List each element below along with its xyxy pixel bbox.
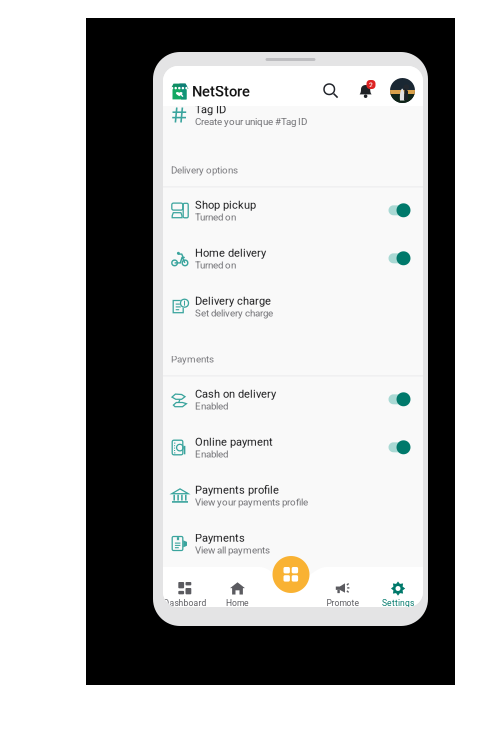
staticText: Set delivery charge [195, 307, 273, 319]
staticText: Tag ID [195, 103, 226, 116]
staticText: Delivery options [171, 164, 238, 176]
staticText: View your payments profile [195, 496, 308, 508]
button[interactable]: Tag ID [163, 92, 423, 140]
button[interactable]: Apps [272, 556, 309, 593]
staticText: Online payment [195, 435, 273, 448]
staticText: Payments [171, 353, 214, 365]
staticText: Home delivery [195, 246, 266, 259]
button[interactable]: Home delivery [163, 235, 423, 283]
staticText: Delivery charge [195, 294, 271, 307]
button[interactable]: Search [323, 83, 339, 99]
button[interactable]: Home [211, 567, 263, 607]
button[interactable]: Profile [390, 78, 415, 103]
button[interactable]: Payments [163, 520, 423, 568]
staticText: View all payments [195, 544, 270, 556]
staticText: Promote [326, 598, 359, 608]
button[interactable]: Online payment [163, 424, 423, 472]
button[interactable]: Promote [317, 567, 369, 607]
staticText: Create your unique #Tag ID [195, 116, 307, 127]
staticText: Turned on [195, 211, 236, 223]
button[interactable]: Dashboard [159, 567, 211, 607]
button[interactable]: Delivery charge [163, 283, 423, 331]
staticText: Cash on delivery [195, 387, 276, 400]
staticText: Home [226, 598, 249, 608]
staticText: 2 [369, 81, 373, 89]
staticText: Turned on [195, 259, 236, 271]
button[interactable]: Payments profile [163, 472, 423, 520]
staticText: Settings [382, 598, 414, 608]
staticText: Payments [195, 531, 245, 544]
button[interactable]: Settings [372, 567, 424, 607]
button[interactable]: Cash on delivery [163, 376, 423, 424]
staticText: Enabled [195, 448, 228, 460]
staticText: Enabled [195, 400, 228, 412]
button[interactable]: Notifications [357, 80, 377, 100]
staticText: Shop pickup [195, 198, 256, 211]
staticText: Payments profile [195, 483, 279, 496]
button[interactable]: Shop pickup [163, 187, 423, 235]
staticText: NetStore [192, 83, 250, 100]
staticText: Dashboard [163, 598, 206, 608]
